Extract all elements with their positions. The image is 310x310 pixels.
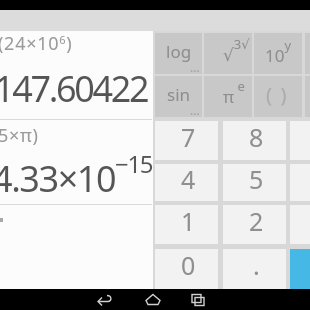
staticText: 2 <box>249 204 264 238</box>
staticText: 8 <box>249 120 264 154</box>
staticText: √3√ <box>223 35 250 65</box>
staticText: . <box>253 248 260 282</box>
button[interactable]: 7 <box>155 121 218 160</box>
button[interactable]: 10y <box>254 33 302 74</box>
staticText: ( ) <box>266 81 288 108</box>
staticText: sin <box>167 83 191 106</box>
staticText: 1 <box>181 204 196 238</box>
button[interactable]: ( ) <box>254 76 302 117</box>
button[interactable]: 1 <box>155 205 218 244</box>
button[interactable]: log <box>155 33 202 74</box>
staticText: 147.60422 <box>0 64 148 106</box>
staticText: 4 <box>181 162 196 196</box>
staticText: 0 <box>181 248 196 282</box>
button[interactable]: π e <box>204 76 252 117</box>
staticText: log <box>166 40 192 63</box>
button[interactable]: 4 <box>155 164 218 201</box>
button[interactable]: √3√ <box>204 33 252 74</box>
staticText: π e <box>223 77 245 108</box>
staticText: 10y <box>265 36 292 67</box>
staticText: ... <box>190 102 200 118</box>
button[interactable]: . <box>223 249 286 289</box>
button[interactable]: sin <box>155 76 202 117</box>
staticText: 4.33×10−15 <box>0 147 152 189</box>
staticText: (24×106) <box>0 31 73 56</box>
button[interactable]: 5 <box>223 164 286 201</box>
staticText: ... <box>190 59 200 75</box>
staticText: 5 <box>249 162 264 196</box>
staticText: 7 <box>181 120 196 154</box>
staticText: 5×π) <box>0 123 39 148</box>
button[interactable]: 2 <box>223 205 286 244</box>
button[interactable]: 0 <box>155 249 218 289</box>
button[interactable]: 8 <box>223 121 286 160</box>
